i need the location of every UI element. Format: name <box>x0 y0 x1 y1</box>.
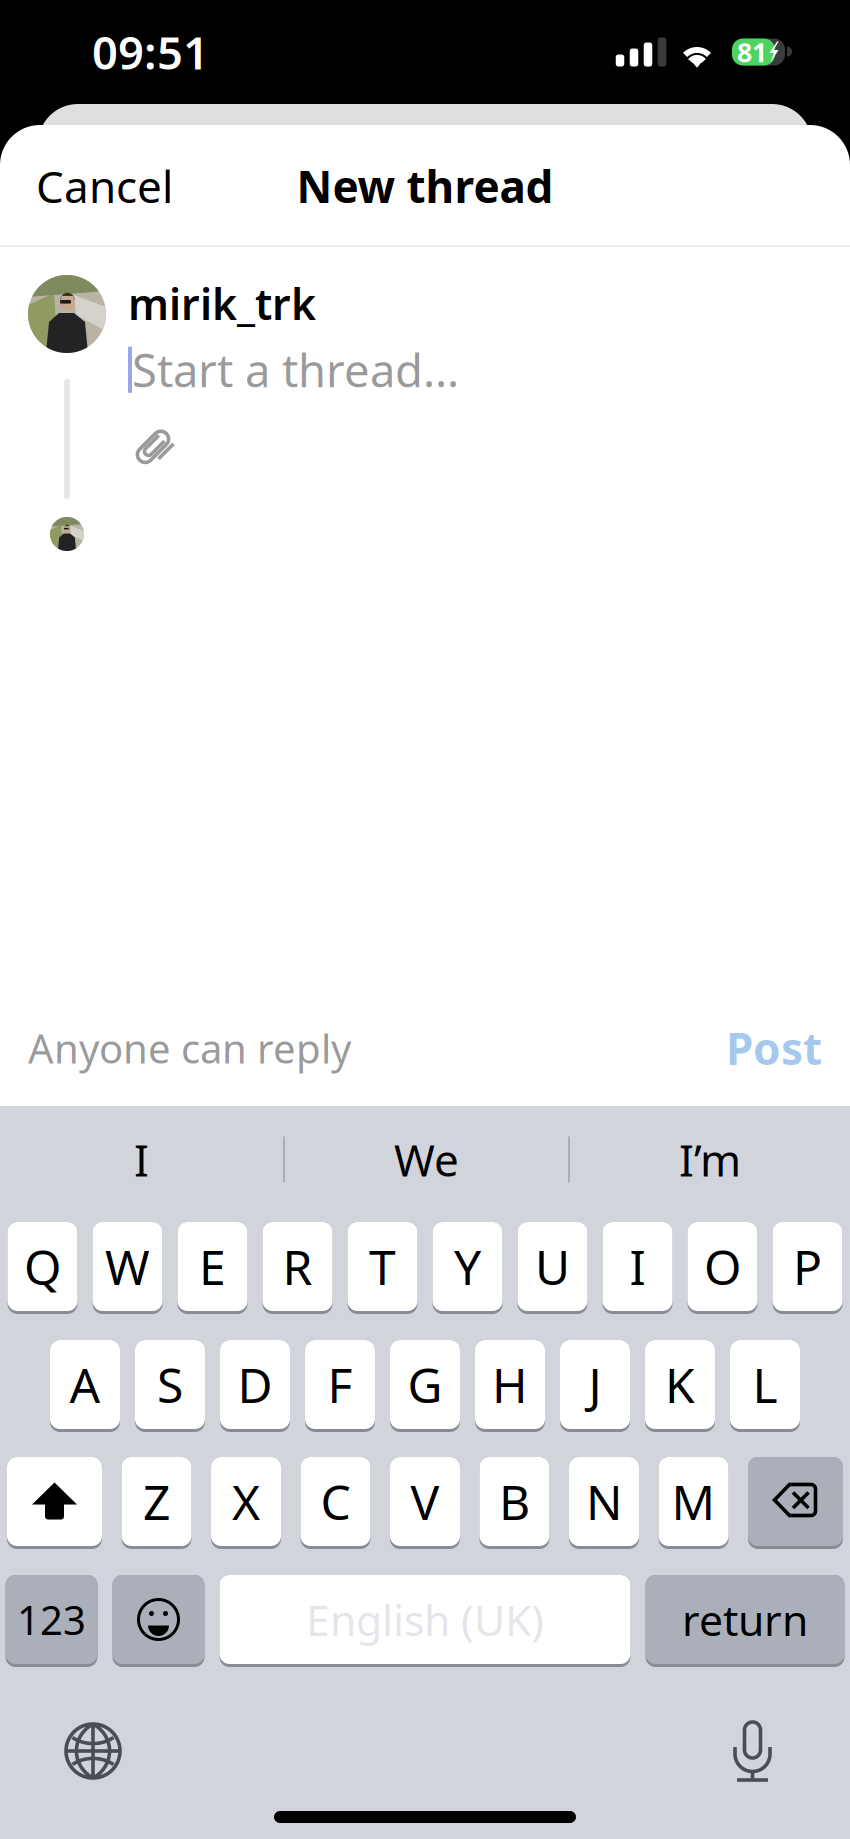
button[interactable]: Anyone can reply <box>28 1002 351 1094</box>
button[interactable]: R <box>262 1222 332 1314</box>
button[interactable]: Delete <box>748 1457 843 1549</box>
staticText: We <box>394 1130 459 1189</box>
staticText: F <box>327 1353 352 1416</box>
staticText: I’m <box>679 1130 741 1189</box>
staticText: Start a thread... <box>132 340 459 400</box>
staticText: return <box>682 1591 808 1648</box>
staticText: G <box>407 1353 442 1416</box>
staticText: New thread <box>296 157 553 215</box>
staticText: K <box>665 1353 695 1416</box>
staticText: C <box>320 1470 350 1533</box>
staticText: 123 <box>17 1593 86 1646</box>
staticText: T <box>369 1235 396 1298</box>
staticText: R <box>282 1235 312 1298</box>
button[interactable]: L <box>730 1340 800 1432</box>
button[interactable]: M <box>658 1457 728 1549</box>
staticText: X <box>232 1470 260 1533</box>
button[interactable]: Shift <box>7 1457 102 1549</box>
staticText: J <box>588 1353 601 1416</box>
staticText: A <box>69 1353 100 1416</box>
button[interactable]: T <box>347 1222 417 1314</box>
button[interactable]: X <box>211 1457 281 1549</box>
staticText: B <box>499 1470 530 1533</box>
staticText: mirik_trk <box>128 275 316 332</box>
button[interactable]: I <box>0 1106 283 1213</box>
button[interactable]: Y <box>432 1222 502 1314</box>
staticText: H <box>492 1353 528 1416</box>
staticText: Anyone can reply <box>28 1021 351 1074</box>
button[interactable]: Q <box>7 1222 77 1314</box>
staticText: N <box>586 1470 622 1533</box>
staticText: Q <box>24 1235 61 1298</box>
staticText: I <box>134 1130 149 1189</box>
staticText: P <box>793 1235 822 1298</box>
staticText: Post <box>726 1019 822 1077</box>
button[interactable]: Dictate <box>733 1719 850 1783</box>
staticText: V <box>410 1470 439 1533</box>
staticText: 09:51 <box>92 22 209 82</box>
staticText: W <box>105 1235 150 1298</box>
button[interactable]: return <box>645 1575 844 1667</box>
button[interactable]: Attach media <box>128 424 180 472</box>
button[interactable]: Next keyboard <box>0 1722 122 1780</box>
staticText: M <box>671 1470 715 1533</box>
staticText: I <box>629 1235 645 1298</box>
button[interactable]: 123 <box>5 1575 97 1667</box>
button[interactable]: U <box>517 1222 587 1314</box>
button[interactable]: K <box>645 1340 715 1432</box>
button[interactable]: D <box>220 1340 290 1432</box>
button[interactable]: F <box>305 1340 375 1432</box>
button[interactable]: C <box>300 1457 370 1549</box>
button[interactable]: H <box>475 1340 545 1432</box>
staticText: Cancel <box>36 157 173 215</box>
button[interactable]: V <box>390 1457 460 1549</box>
button[interactable]: Z <box>121 1457 191 1549</box>
button[interactable]: Post <box>726 1002 822 1094</box>
button[interactable]: B <box>479 1457 549 1549</box>
button[interactable]: Cancel <box>0 125 209 247</box>
button[interactable]: We <box>285 1106 568 1213</box>
button[interactable]: A <box>50 1340 120 1432</box>
button[interactable]: I <box>602 1222 672 1314</box>
button[interactable]: P <box>772 1222 842 1314</box>
button[interactable]: W <box>92 1222 162 1314</box>
staticText: L <box>752 1353 777 1416</box>
button[interactable]: I’m <box>570 1106 850 1213</box>
button[interactable]: E <box>177 1222 247 1314</box>
staticText: E <box>199 1235 226 1298</box>
staticText: Y <box>454 1235 481 1298</box>
button[interactable]: J <box>560 1340 630 1432</box>
button[interactable]: N <box>569 1457 639 1549</box>
button[interactable]: Emoji <box>112 1575 204 1667</box>
button[interactable]: G <box>390 1340 460 1432</box>
button[interactable]: S <box>135 1340 205 1432</box>
staticText: U <box>535 1235 570 1298</box>
staticText: O <box>704 1235 741 1298</box>
button[interactable]: O <box>687 1222 757 1314</box>
staticText: D <box>237 1353 272 1416</box>
staticText: English (UK) <box>306 1591 544 1648</box>
staticText: 81 <box>737 34 767 70</box>
button[interactable]: English (UK) <box>219 1575 630 1667</box>
staticText: Z <box>143 1470 170 1533</box>
staticText: S <box>157 1353 183 1416</box>
